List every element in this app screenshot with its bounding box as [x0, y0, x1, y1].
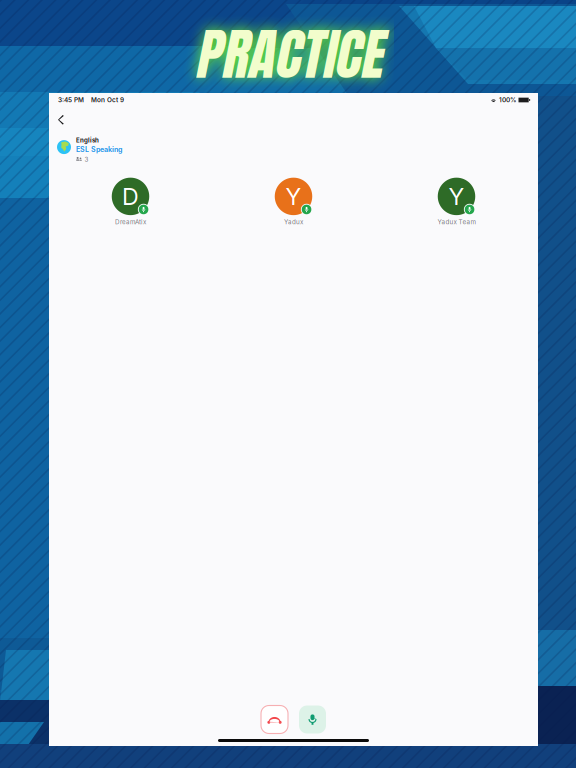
staticText: English: [76, 137, 99, 144]
staticText: D: [122, 182, 139, 210]
staticText: Y: [285, 182, 301, 210]
button[interactable]: Y: [375, 178, 538, 226]
button[interactable]: End call: [261, 705, 288, 733]
staticText: 100%: [499, 96, 516, 104]
staticText: Yadux: [284, 218, 303, 226]
staticText: Mon Oct 9: [91, 96, 124, 104]
staticText: Y: [448, 182, 464, 210]
staticText: ESL Speaking: [76, 145, 122, 154]
button[interactable]: Y: [212, 178, 375, 226]
staticText: Yadux Team: [437, 218, 475, 226]
staticText: DreamAtix: [115, 218, 146, 226]
staticText: 3: [84, 156, 88, 163]
button[interactable]: Back: [49, 111, 74, 129]
staticText: PRACTICE: [194, 13, 382, 96]
staticText: 3:45 PM: [58, 96, 84, 104]
button[interactable]: Mute microphone: [299, 705, 326, 733]
button[interactable]: D: [49, 178, 212, 226]
